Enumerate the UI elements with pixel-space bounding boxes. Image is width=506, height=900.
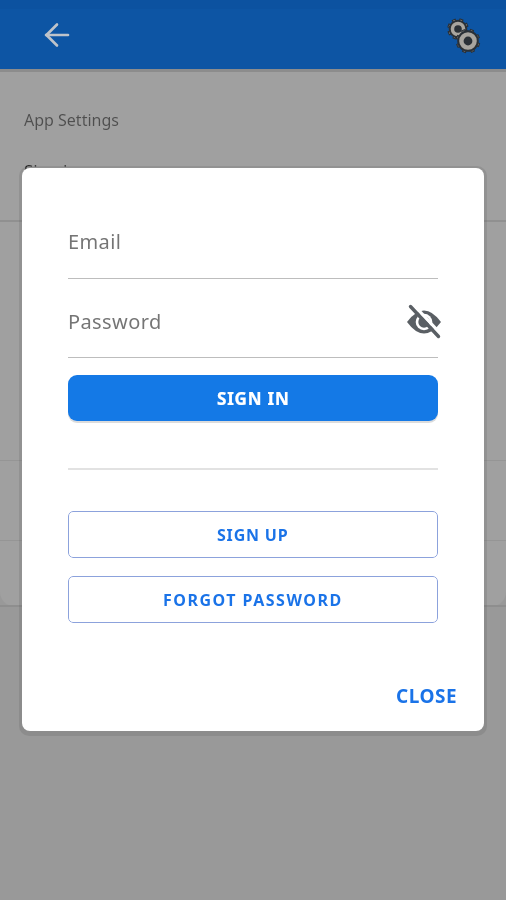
button[interactable]: Password [68, 308, 438, 359]
button[interactable]: SIGN UP [68, 511, 438, 558]
staticText: Sign in [24, 159, 78, 182]
button[interactable] [442, 15, 486, 59]
staticText: CLOSE [396, 683, 458, 709]
button[interactable]: CLOSE [396, 683, 458, 709]
staticText: SIGN UP [217, 524, 289, 546]
button[interactable]: FORGOT PASSWORD [68, 576, 438, 623]
button[interactable] [33, 11, 81, 59]
button[interactable] [406, 304, 442, 340]
staticText: FORGOT PASSWORD [163, 589, 343, 611]
staticText: SIGN IN [217, 387, 290, 410]
staticText: Email [68, 228, 122, 255]
staticText: App Settings [24, 109, 119, 131]
button[interactable]: Email [68, 228, 438, 280]
staticText: Password [68, 308, 162, 335]
button[interactable]: SIGN IN [68, 375, 438, 421]
